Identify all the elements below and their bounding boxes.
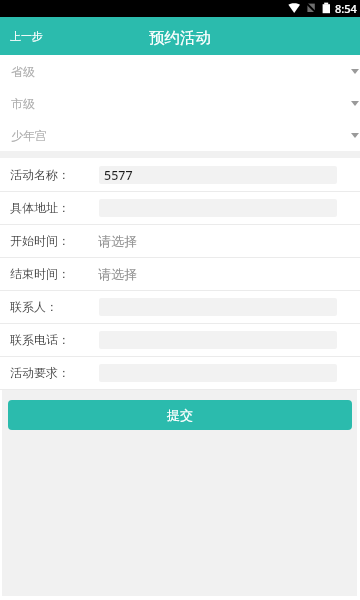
staticText: 请选择: [98, 233, 137, 249]
other: Open dropdown: [351, 69, 359, 74]
staticText: 具体地址：: [10, 200, 70, 215]
staticText: 少年宫: [11, 128, 47, 143]
staticText: 请选择: [98, 266, 137, 282]
button[interactable]: 开始时间：: [0, 224, 360, 257]
staticText: 联系人：: [10, 299, 58, 314]
staticText: 活动名称：: [10, 167, 70, 182]
button[interactable]: 活动名称：: [0, 158, 360, 191]
staticText: 8:54: [335, 1, 357, 16]
button[interactable]: 省级: [0, 55, 360, 87]
staticText: 预约活动: [149, 28, 211, 48]
staticText: 结束时间：: [10, 266, 70, 281]
staticText: 开始时间：: [10, 233, 70, 248]
button[interactable]: 具体地址：: [0, 191, 360, 224]
button[interactable]: 活动要求：: [0, 356, 360, 389]
button[interactable]: 提交: [8, 400, 352, 430]
staticText: 省级: [11, 64, 35, 79]
button[interactable]: 上一步: [0, 17, 53, 55]
button[interactable]: 少年宫: [0, 119, 360, 151]
staticText: 市级: [11, 96, 35, 111]
button[interactable]: 市级: [0, 87, 360, 119]
staticText: 联系电话：: [10, 332, 70, 347]
staticText: 提交: [167, 407, 193, 423]
other: Open dropdown: [351, 133, 359, 138]
other: Open dropdown: [351, 101, 359, 106]
staticText: 5577: [104, 167, 133, 184]
button[interactable]: 联系人：: [0, 290, 360, 323]
staticText: 上一步: [10, 29, 43, 43]
button[interactable]: 结束时间：: [0, 257, 360, 290]
staticText: 活动要求：: [10, 365, 70, 380]
button[interactable]: 联系电话：: [0, 323, 360, 356]
